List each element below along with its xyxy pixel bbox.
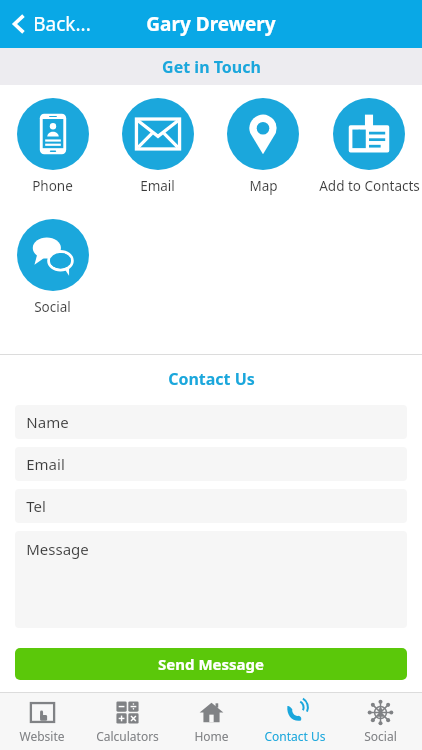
staticText: Calculators	[96, 728, 159, 744]
button[interactable]: Name	[15, 405, 407, 439]
staticText: Message	[26, 539, 89, 559]
staticText: Contact Us	[264, 728, 326, 744]
staticText: Map	[249, 177, 278, 195]
button[interactable]: Tel	[15, 489, 407, 523]
button[interactable]: Email	[15, 447, 407, 481]
button[interactable]: Map	[210, 98, 316, 195]
staticText: Gary Drewery	[146, 11, 276, 37]
button[interactable]: Phone	[0, 98, 105, 195]
button[interactable]: Website	[0, 699, 84, 744]
staticText: Website	[19, 728, 65, 744]
button[interactable]: Back...	[0, 5, 103, 43]
button[interactable]: Social	[0, 219, 105, 316]
staticText: Home	[194, 728, 229, 744]
button[interactable]: Send Message	[15, 648, 407, 680]
staticText: Social	[364, 728, 397, 744]
button[interactable]: Email	[105, 98, 210, 195]
button[interactable]: Calculators	[85, 699, 169, 744]
staticText: Email	[26, 454, 65, 474]
staticText: Name	[26, 412, 69, 432]
button[interactable]: Social	[338, 699, 422, 744]
staticText: Contact Us	[168, 368, 255, 390]
staticText: Back...	[33, 11, 91, 37]
staticText: Social	[34, 298, 71, 316]
button[interactable]: Message	[15, 531, 407, 628]
staticText: Get in Touch	[162, 56, 261, 78]
button[interactable]: Home	[169, 699, 253, 744]
staticText: Tel	[26, 496, 46, 516]
staticText: Phone	[32, 177, 73, 195]
staticText: Add to Contacts	[319, 177, 420, 195]
staticText: Send Message	[158, 654, 264, 674]
button[interactable]: Add to Contacts	[316, 98, 422, 195]
staticText: Email	[140, 177, 175, 195]
button[interactable]: Contact Us	[253, 699, 337, 744]
